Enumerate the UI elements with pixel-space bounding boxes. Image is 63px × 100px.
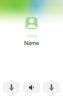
staticText: calling — [26, 33, 37, 38]
button[interactable]: Speaker — [23, 82, 40, 93]
button[interactable]: More — [43, 82, 60, 93]
staticText: Name — [24, 39, 39, 46]
button[interactable]: Mute — [3, 82, 20, 93]
